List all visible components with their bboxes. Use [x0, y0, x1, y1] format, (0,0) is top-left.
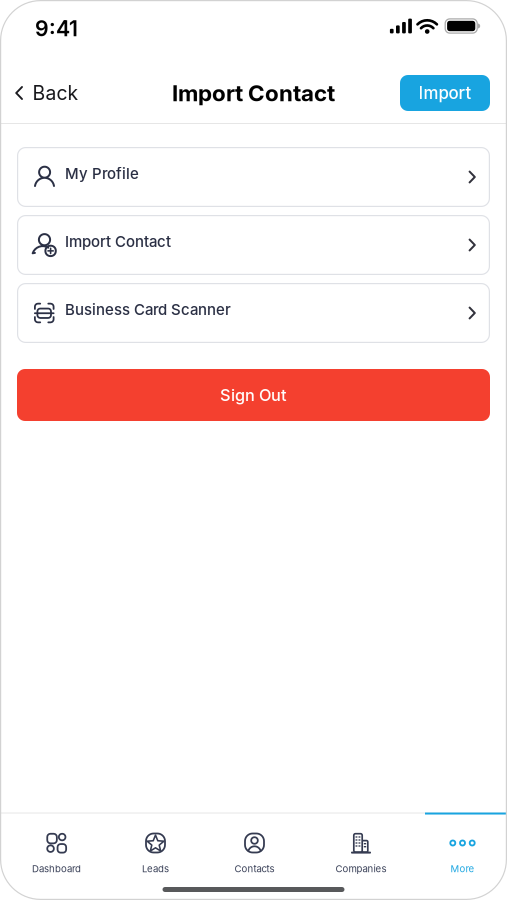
staticText: Contacts [234, 863, 274, 875]
button[interactable]: Back [0, 81, 78, 105]
staticText: My Profile [65, 164, 139, 183]
staticText: Leads [142, 863, 169, 875]
button[interactable]: Dashboard [8, 832, 105, 875]
staticText: 9:41 [35, 16, 78, 41]
button[interactable]: My Profile [17, 147, 490, 207]
staticText: Companies [335, 863, 386, 875]
button[interactable]: More [415, 832, 507, 875]
staticText: Sign Out [220, 385, 287, 405]
staticText: Import Contact [65, 232, 171, 251]
staticText: Dashboard [32, 863, 81, 875]
staticText: Import [418, 83, 471, 103]
button[interactable]: Sign Out [17, 369, 490, 421]
staticText: More [450, 863, 474, 875]
staticText: Back [32, 81, 78, 105]
button[interactable]: Import [400, 75, 490, 111]
staticText: Import Contact [172, 79, 335, 106]
staticText: Business Card Scanner [65, 300, 231, 319]
button[interactable]: Companies [306, 832, 416, 875]
button[interactable]: Import Contact [17, 215, 490, 275]
button[interactable]: Leads [105, 832, 206, 875]
button[interactable]: Contacts [206, 832, 303, 875]
button[interactable]: Business Card Scanner [17, 283, 490, 343]
